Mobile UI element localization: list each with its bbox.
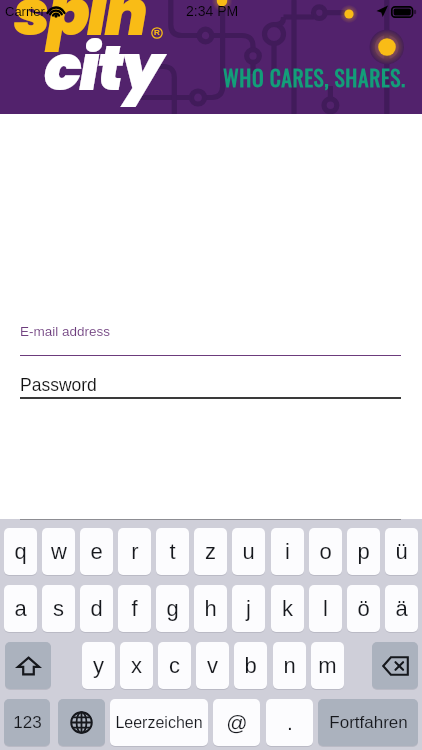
button[interactable]: .: [266, 699, 313, 746]
staticText: y: [93, 653, 104, 678]
staticText: e: [90, 539, 103, 564]
staticText: g: [166, 596, 179, 621]
button[interactable]: ä: [385, 585, 418, 632]
staticText: v: [207, 653, 218, 678]
button[interactable]: l: [309, 585, 342, 632]
staticText: k: [282, 596, 293, 621]
staticText: f: [131, 596, 138, 621]
staticText: j: [246, 596, 251, 621]
staticText: a: [14, 596, 27, 621]
staticText: s: [53, 596, 64, 621]
staticText: n: [283, 653, 296, 678]
staticText: ü: [395, 539, 408, 564]
button[interactable]: r: [118, 528, 151, 575]
button[interactable]: j: [232, 585, 265, 632]
button[interactable]: u: [232, 528, 265, 575]
staticText: h: [204, 596, 217, 621]
button[interactable]: x: [120, 642, 153, 689]
button[interactable]: y: [82, 642, 115, 689]
button[interactable]: b: [234, 642, 267, 689]
staticText: Carrier: [5, 4, 45, 19]
staticText: m: [318, 653, 337, 678]
staticText: x: [131, 653, 142, 678]
button[interactable]: c: [158, 642, 191, 689]
staticText: .: [287, 711, 293, 734]
button[interactable]: e: [80, 528, 113, 575]
button[interactable]: n: [273, 642, 306, 689]
staticText: u: [242, 539, 255, 564]
staticText: city: [44, 25, 161, 112]
staticText: i: [285, 539, 290, 564]
button[interactable]: Backspace: [372, 642, 418, 689]
button[interactable]: g: [156, 585, 189, 632]
staticText: c: [169, 653, 180, 678]
button[interactable]: q: [4, 528, 37, 575]
button[interactable]: h: [194, 585, 227, 632]
staticText: E-mail address: [20, 324, 111, 339]
button[interactable]: @: [213, 699, 260, 746]
staticText: b: [244, 653, 257, 678]
staticText: q: [14, 539, 27, 564]
staticText: r: [131, 539, 139, 564]
button[interactable]: Fortfahren: [318, 699, 418, 746]
staticText: t: [169, 539, 176, 564]
button[interactable]: a: [4, 585, 37, 632]
button[interactable]: Password: [20, 370, 401, 397]
staticText: @: [226, 711, 248, 734]
staticText: 123: [13, 713, 42, 732]
button[interactable]: v: [196, 642, 229, 689]
button[interactable]: f: [118, 585, 151, 632]
button[interactable]: Switch keyboard: [58, 699, 105, 746]
button[interactable]: ö: [347, 585, 380, 632]
staticText: ö: [357, 596, 370, 621]
button[interactable]: z: [194, 528, 227, 575]
button[interactable]: m: [311, 642, 344, 689]
staticText: Password: [20, 375, 97, 395]
staticText: WHO CARES, SHARES.: [223, 61, 406, 93]
button[interactable]: E-mail address: [20, 318, 401, 356]
button[interactable]: Shift: [5, 642, 51, 689]
staticText: d: [90, 596, 103, 621]
button[interactable]: o: [309, 528, 342, 575]
button[interactable]: k: [271, 585, 304, 632]
staticText: p: [357, 539, 370, 564]
button[interactable]: i: [271, 528, 304, 575]
staticText: spin: [14, 0, 146, 57]
staticText: l: [323, 596, 328, 621]
staticText: R: [154, 28, 160, 37]
button[interactable]: t: [156, 528, 189, 575]
button[interactable]: Leerzeichen: [110, 699, 208, 746]
staticText: Fortfahren: [329, 713, 408, 732]
staticText: o: [319, 539, 332, 564]
staticText: ä: [395, 596, 408, 621]
button[interactable]: ü: [385, 528, 418, 575]
staticText: w: [51, 539, 67, 564]
staticText: Leerzeichen: [115, 714, 203, 732]
button[interactable]: p: [347, 528, 380, 575]
button[interactable]: w: [42, 528, 75, 575]
button[interactable]: s: [42, 585, 75, 632]
staticText: 2:34 PM: [186, 3, 239, 19]
button[interactable]: 123: [4, 699, 50, 746]
staticText: z: [205, 539, 216, 564]
button[interactable]: d: [80, 585, 113, 632]
